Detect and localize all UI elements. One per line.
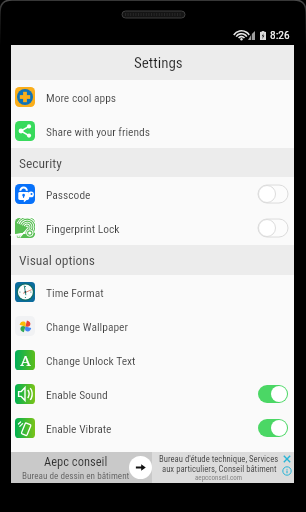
staticText: Enable Sound	[46, 388, 108, 401]
staticText: Aepc conseil	[44, 454, 108, 469]
staticText: Bureau d'étude technique, Services	[159, 454, 279, 464]
staticText: Bureau de dessin en bâtiment	[22, 470, 130, 481]
button[interactable]: Fingerprint Lock	[11, 211, 294, 245]
staticText: Fingerprint Lock	[46, 222, 120, 235]
button[interactable]: Enable Sound	[11, 377, 294, 411]
button[interactable]: Toggle off	[258, 185, 288, 203]
button[interactable]: Aepc conseil	[11, 452, 294, 483]
button[interactable]: Share with your friends	[11, 114, 294, 148]
staticText: More cool apps	[46, 91, 117, 104]
button[interactable]: More cool apps	[11, 80, 294, 114]
button[interactable]: Toggle on	[258, 419, 288, 437]
button[interactable]: Toggle off	[258, 219, 288, 237]
button[interactable]: Toggle on	[258, 385, 288, 403]
staticText: Time Format	[46, 286, 104, 299]
button[interactable]: Enable Vibrate	[11, 411, 294, 445]
staticText: Security	[19, 155, 62, 171]
staticText: 8:26	[270, 28, 290, 41]
button[interactable]: Close ad	[282, 454, 292, 464]
staticText: Settings	[134, 54, 183, 72]
button[interactable]: Change Wallpaper	[11, 309, 294, 343]
staticText: A	[20, 350, 31, 370]
staticText: Visual options	[19, 252, 96, 268]
staticText: aepcconseil.com	[195, 474, 243, 482]
button[interactable]: Passcode	[11, 177, 294, 211]
staticText: Change Wallpaper	[46, 320, 128, 333]
button[interactable]: Time Format	[11, 275, 294, 309]
button[interactable]: A	[11, 343, 294, 377]
staticText: aux particuliers, Conseil bâtiment	[162, 464, 277, 474]
button[interactable]: Open ad	[129, 456, 152, 479]
staticText: Passcode	[46, 188, 91, 201]
staticText: Share with your friends	[46, 125, 151, 138]
staticText: Change Unlock Text	[46, 354, 136, 367]
staticText: Enable Vibrate	[46, 422, 112, 435]
button[interactable]: Ad information	[282, 466, 292, 476]
